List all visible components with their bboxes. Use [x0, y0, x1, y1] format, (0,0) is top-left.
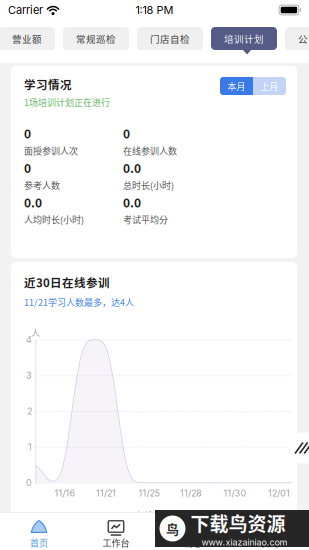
staticText: 0	[123, 125, 130, 142]
staticText: 近30日在线参训	[24, 274, 110, 291]
staticText: 工作台	[102, 536, 129, 549]
staticText: 面授参训人次	[24, 144, 78, 157]
staticText: 0	[24, 159, 31, 176]
staticText: 3	[26, 370, 32, 381]
staticText: www.xiazainiao.com	[201, 537, 287, 548]
staticText: 本月	[227, 79, 245, 92]
staticText: 0	[26, 477, 32, 488]
staticText: 1	[28, 441, 32, 452]
staticText: 首页	[30, 536, 48, 549]
button[interactable]: 公司	[285, 27, 309, 50]
staticText: 11/28	[180, 488, 202, 499]
staticText: 11/30	[223, 488, 246, 499]
staticText: 0.0	[123, 159, 141, 176]
button[interactable]: 快捷菜单	[288, 432, 309, 464]
button[interactable]: 本月	[220, 77, 253, 95]
staticText: 在线参训人数	[135, 509, 189, 521]
button[interactable]: 上月	[253, 77, 286, 95]
staticText: 0.0	[123, 193, 141, 211]
staticText: 下载鸟资源	[190, 509, 285, 537]
button[interactable]: 门店自检	[137, 27, 203, 50]
staticText: 总时长(小时)	[123, 178, 174, 191]
staticText: Carrier	[8, 3, 43, 17]
button[interactable]: 工作台	[77, 519, 154, 550]
staticText: 11/16	[54, 488, 75, 499]
staticText: 人	[31, 326, 40, 339]
staticText: 考试平均分	[123, 213, 168, 226]
staticText: 2	[27, 406, 32, 417]
staticText: 公司	[298, 32, 309, 45]
staticText: 11/21	[96, 488, 116, 499]
staticText: 1场培训计划正在进行	[24, 96, 110, 109]
button[interactable]: 我的	[231, 519, 308, 550]
staticText: 0	[24, 125, 31, 142]
button[interactable]: 培训计划	[211, 27, 277, 50]
button[interactable]: 消息	[154, 519, 231, 550]
button[interactable]: 首页	[0, 519, 77, 550]
staticText: 0.0	[24, 193, 42, 211]
staticText: 11/25	[138, 488, 159, 499]
staticText: 上月	[260, 79, 278, 92]
staticText: 人均时长(小时)	[24, 213, 84, 226]
staticText: 4	[26, 334, 32, 345]
staticText: 培训计划	[224, 32, 264, 45]
staticText: 11/21学习人数最多，达4人	[24, 296, 134, 309]
staticText: 12/01	[268, 488, 290, 499]
staticText: 营业额	[12, 32, 42, 45]
staticText: 门店自检	[150, 32, 190, 45]
staticText: 参考人数	[24, 178, 60, 191]
staticText: 在线参训人数	[123, 144, 177, 157]
staticText: 鸟	[166, 519, 179, 538]
staticText: 常规巡检	[76, 32, 116, 45]
staticText: 我的	[261, 536, 279, 549]
button[interactable]: 常规巡检	[63, 27, 129, 50]
staticText: 1:18 PM	[135, 3, 173, 17]
button[interactable]: 营业额	[0, 27, 55, 50]
staticText: 学习情况	[24, 76, 72, 93]
staticText: 消息	[184, 536, 202, 549]
